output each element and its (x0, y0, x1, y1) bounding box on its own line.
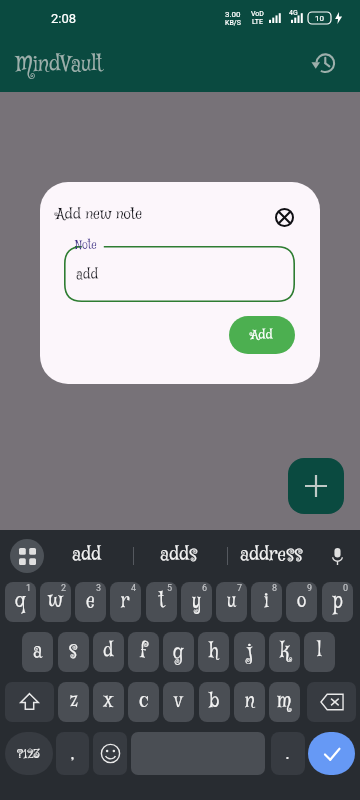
button[interactable]: add (43, 528, 131, 580)
button[interactable]: adds (135, 528, 223, 580)
staticText: 3.00 (225, 10, 241, 19)
staticText: 4G (289, 9, 298, 17)
staticText: 1 (26, 583, 32, 594)
button[interactable]: . (271, 732, 305, 775)
staticText: q (15, 589, 26, 615)
button[interactable]: c (128, 682, 159, 722)
button[interactable]: Enter (308, 732, 355, 775)
staticText: 4 (131, 583, 137, 594)
staticText: s (69, 639, 78, 665)
staticText: x (104, 689, 113, 715)
button[interactable]: q (5, 582, 36, 622)
staticText: MindVault (16, 50, 103, 79)
button[interactable]: Backspace (307, 682, 356, 722)
staticText: Add (251, 326, 273, 344)
button[interactable]: Symbols (5, 732, 53, 775)
button[interactable]: a (22, 632, 53, 672)
staticText: v (174, 689, 183, 715)
staticText: r (121, 589, 130, 615)
staticText: z (70, 689, 78, 715)
staticText: 6 (202, 583, 208, 594)
button[interactable]: p (322, 582, 353, 622)
button[interactable]: Add note (288, 458, 344, 514)
button[interactable]: m (269, 682, 300, 722)
button[interactable]: History (304, 44, 344, 84)
button[interactable]: v (163, 682, 194, 722)
button[interactable]: u (216, 582, 247, 622)
staticText: 7 (237, 583, 243, 594)
staticText: 8 (272, 583, 278, 594)
staticText: o (297, 589, 307, 615)
staticText: m (277, 689, 292, 715)
staticText: Add new note (56, 205, 143, 225)
staticText: 10 (315, 14, 324, 23)
button[interactable]: n (234, 682, 265, 722)
button[interactable]: l (304, 632, 335, 672)
button[interactable]: Close (269, 202, 299, 232)
staticText: w (48, 589, 63, 615)
staticText: Note (75, 237, 97, 253)
staticText: p (333, 589, 343, 615)
staticText: e (86, 589, 95, 615)
button[interactable]: , (56, 732, 89, 775)
button[interactable]: Emoji (93, 732, 127, 775)
staticText: adds (160, 542, 198, 567)
staticText: 9 (307, 583, 313, 594)
button[interactable]: r (110, 582, 141, 622)
staticText: add (76, 265, 99, 284)
staticText: 0 (343, 583, 349, 594)
button[interactable]: y (181, 582, 212, 622)
staticText: b (209, 689, 220, 715)
staticText: KB/S (225, 19, 241, 27)
staticText: l (317, 639, 322, 665)
staticText: LTE (252, 18, 263, 26)
button[interactable]: Voice input (320, 530, 355, 582)
staticText: add (72, 542, 102, 567)
button[interactable]: Keyboard toolbar (10, 539, 44, 573)
button[interactable]: x (93, 682, 124, 722)
staticText: u (227, 589, 236, 615)
staticText: t (159, 589, 165, 615)
button[interactable]: k (269, 632, 300, 672)
staticText: ?123 (17, 745, 41, 763)
staticText: j (247, 639, 253, 665)
button[interactable]: i (251, 582, 282, 622)
staticText: a (33, 639, 43, 665)
staticText: f (140, 639, 148, 665)
staticText: 2 (61, 583, 67, 594)
staticText: , (71, 741, 75, 767)
staticText: d (103, 639, 114, 665)
button[interactable]: e (75, 582, 106, 622)
staticText: c (139, 689, 149, 715)
staticText: . (286, 741, 290, 767)
button[interactable]: w (40, 582, 71, 622)
button[interactable]: h (198, 632, 229, 672)
staticText: h (209, 639, 219, 665)
staticText: VoD (251, 10, 264, 18)
button[interactable]: Add (229, 316, 295, 354)
staticText: 3 (96, 583, 102, 594)
button[interactable]: Shift (5, 682, 54, 722)
staticText: k (280, 639, 290, 665)
staticText: 5 (167, 583, 173, 594)
button[interactable]: j (234, 632, 265, 672)
staticText: y (192, 589, 201, 615)
staticText: i (264, 589, 269, 615)
staticText: n (245, 689, 255, 715)
staticText: 2:08 (51, 11, 77, 26)
staticText: address (240, 542, 303, 567)
button[interactable]: g (163, 632, 194, 672)
button[interactable]: b (199, 682, 230, 722)
button[interactable]: address (227, 528, 315, 580)
button[interactable]: d (93, 632, 124, 672)
button[interactable]: f (128, 632, 159, 672)
button[interactable]: t (146, 582, 177, 622)
staticText: g (173, 639, 184, 665)
button[interactable]: s (58, 632, 89, 672)
button[interactable]: o (286, 582, 317, 622)
button[interactable]: z (58, 682, 89, 722)
